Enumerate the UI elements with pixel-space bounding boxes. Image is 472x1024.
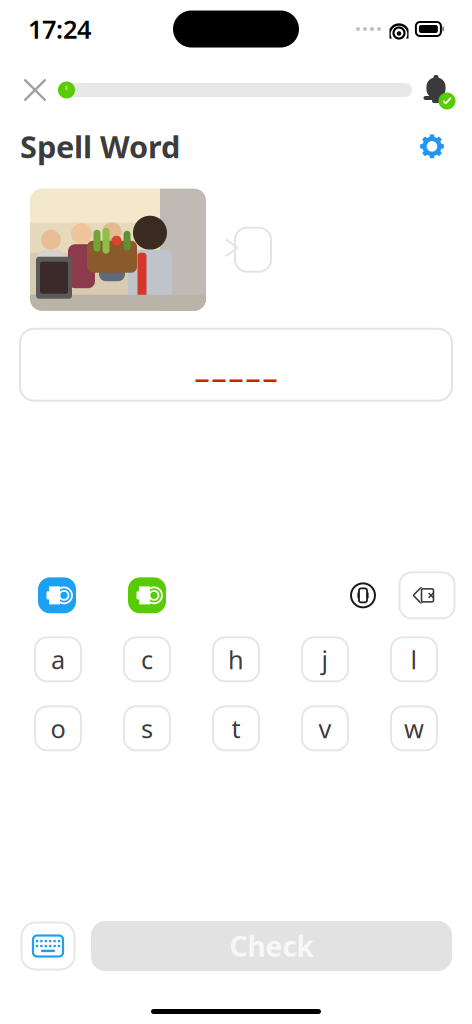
staticText: Check [229,927,313,965]
button[interactable]: Show keyboard [20,921,76,971]
button[interactable]: Play slowly [33,573,81,617]
staticText: a [51,642,65,676]
staticText: 17:24 [28,12,91,46]
button[interactable]: Notifications [412,68,460,112]
button[interactable]: s [124,706,170,750]
button[interactable]: Close [12,68,58,112]
staticText: v [318,711,331,745]
button[interactable]: Backspace [398,571,456,619]
button[interactable]: o [35,706,81,750]
button[interactable]: t [213,706,259,750]
staticText: o [50,711,65,745]
staticText: c [141,642,153,676]
staticText: s [141,711,153,745]
button[interactable]: a [35,637,81,681]
staticText: t [231,711,240,745]
button[interactable]: Play word [123,573,171,617]
button[interactable]: Settings [412,128,452,164]
staticText: h [228,642,244,676]
staticText: w [404,711,424,745]
staticText: l [410,642,417,676]
staticText: Spell Word [20,126,180,167]
button[interactable]: j [302,637,348,681]
button[interactable]: Vibrate [339,573,387,617]
button[interactable]: Check [91,921,452,971]
staticText: j [321,642,328,676]
button[interactable]: l [391,637,437,681]
button[interactable]: v [302,706,348,750]
button[interactable]: c [124,637,170,681]
button[interactable]: h [213,637,259,681]
button[interactable]: w [391,706,437,750]
